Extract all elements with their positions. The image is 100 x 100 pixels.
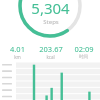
button[interactable]: 203.67: [34, 44, 67, 60]
button[interactable]: Steps progress: [0, 0, 100, 44]
staticText: 02:09: [74, 44, 94, 54]
staticText: 时间: [79, 54, 88, 60]
staticText: Steps: [43, 18, 59, 26]
button[interactable]: 4.01: [0, 44, 34, 60]
staticText: km: [14, 54, 21, 60]
staticText: 5,304: [31, 0, 70, 18]
staticText: kcal: [46, 54, 55, 60]
staticText: 4.01: [10, 44, 25, 54]
button[interactable]: Activity chart: [0, 62, 100, 100]
button[interactable]: 02:09: [67, 44, 100, 60]
staticText: 203.67: [39, 44, 63, 54]
